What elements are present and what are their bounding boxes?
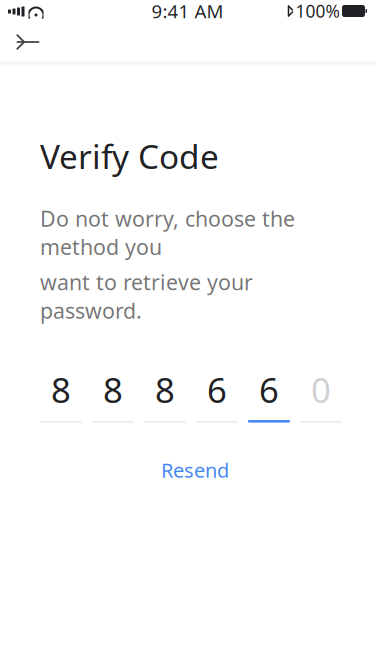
- staticText: want to retrieve your password.: [40, 268, 253, 325]
- staticText: 8: [51, 367, 71, 413]
- staticText: 8: [155, 367, 175, 413]
- staticText: 8: [103, 367, 123, 413]
- staticText: Verify Code: [40, 134, 219, 178]
- button[interactable]: Back: [6, 22, 50, 62]
- staticText: 9:41 AM: [151, 0, 223, 23]
- staticText: Do not worry, choose the method you: [40, 204, 295, 261]
- button[interactable]: Resend: [151, 451, 239, 489]
- staticText: Resend: [161, 457, 229, 483]
- staticText: 6: [207, 367, 227, 413]
- staticText: 100%: [295, 0, 339, 22]
- staticText: 6: [259, 367, 279, 413]
- staticText: 0: [311, 367, 331, 413]
